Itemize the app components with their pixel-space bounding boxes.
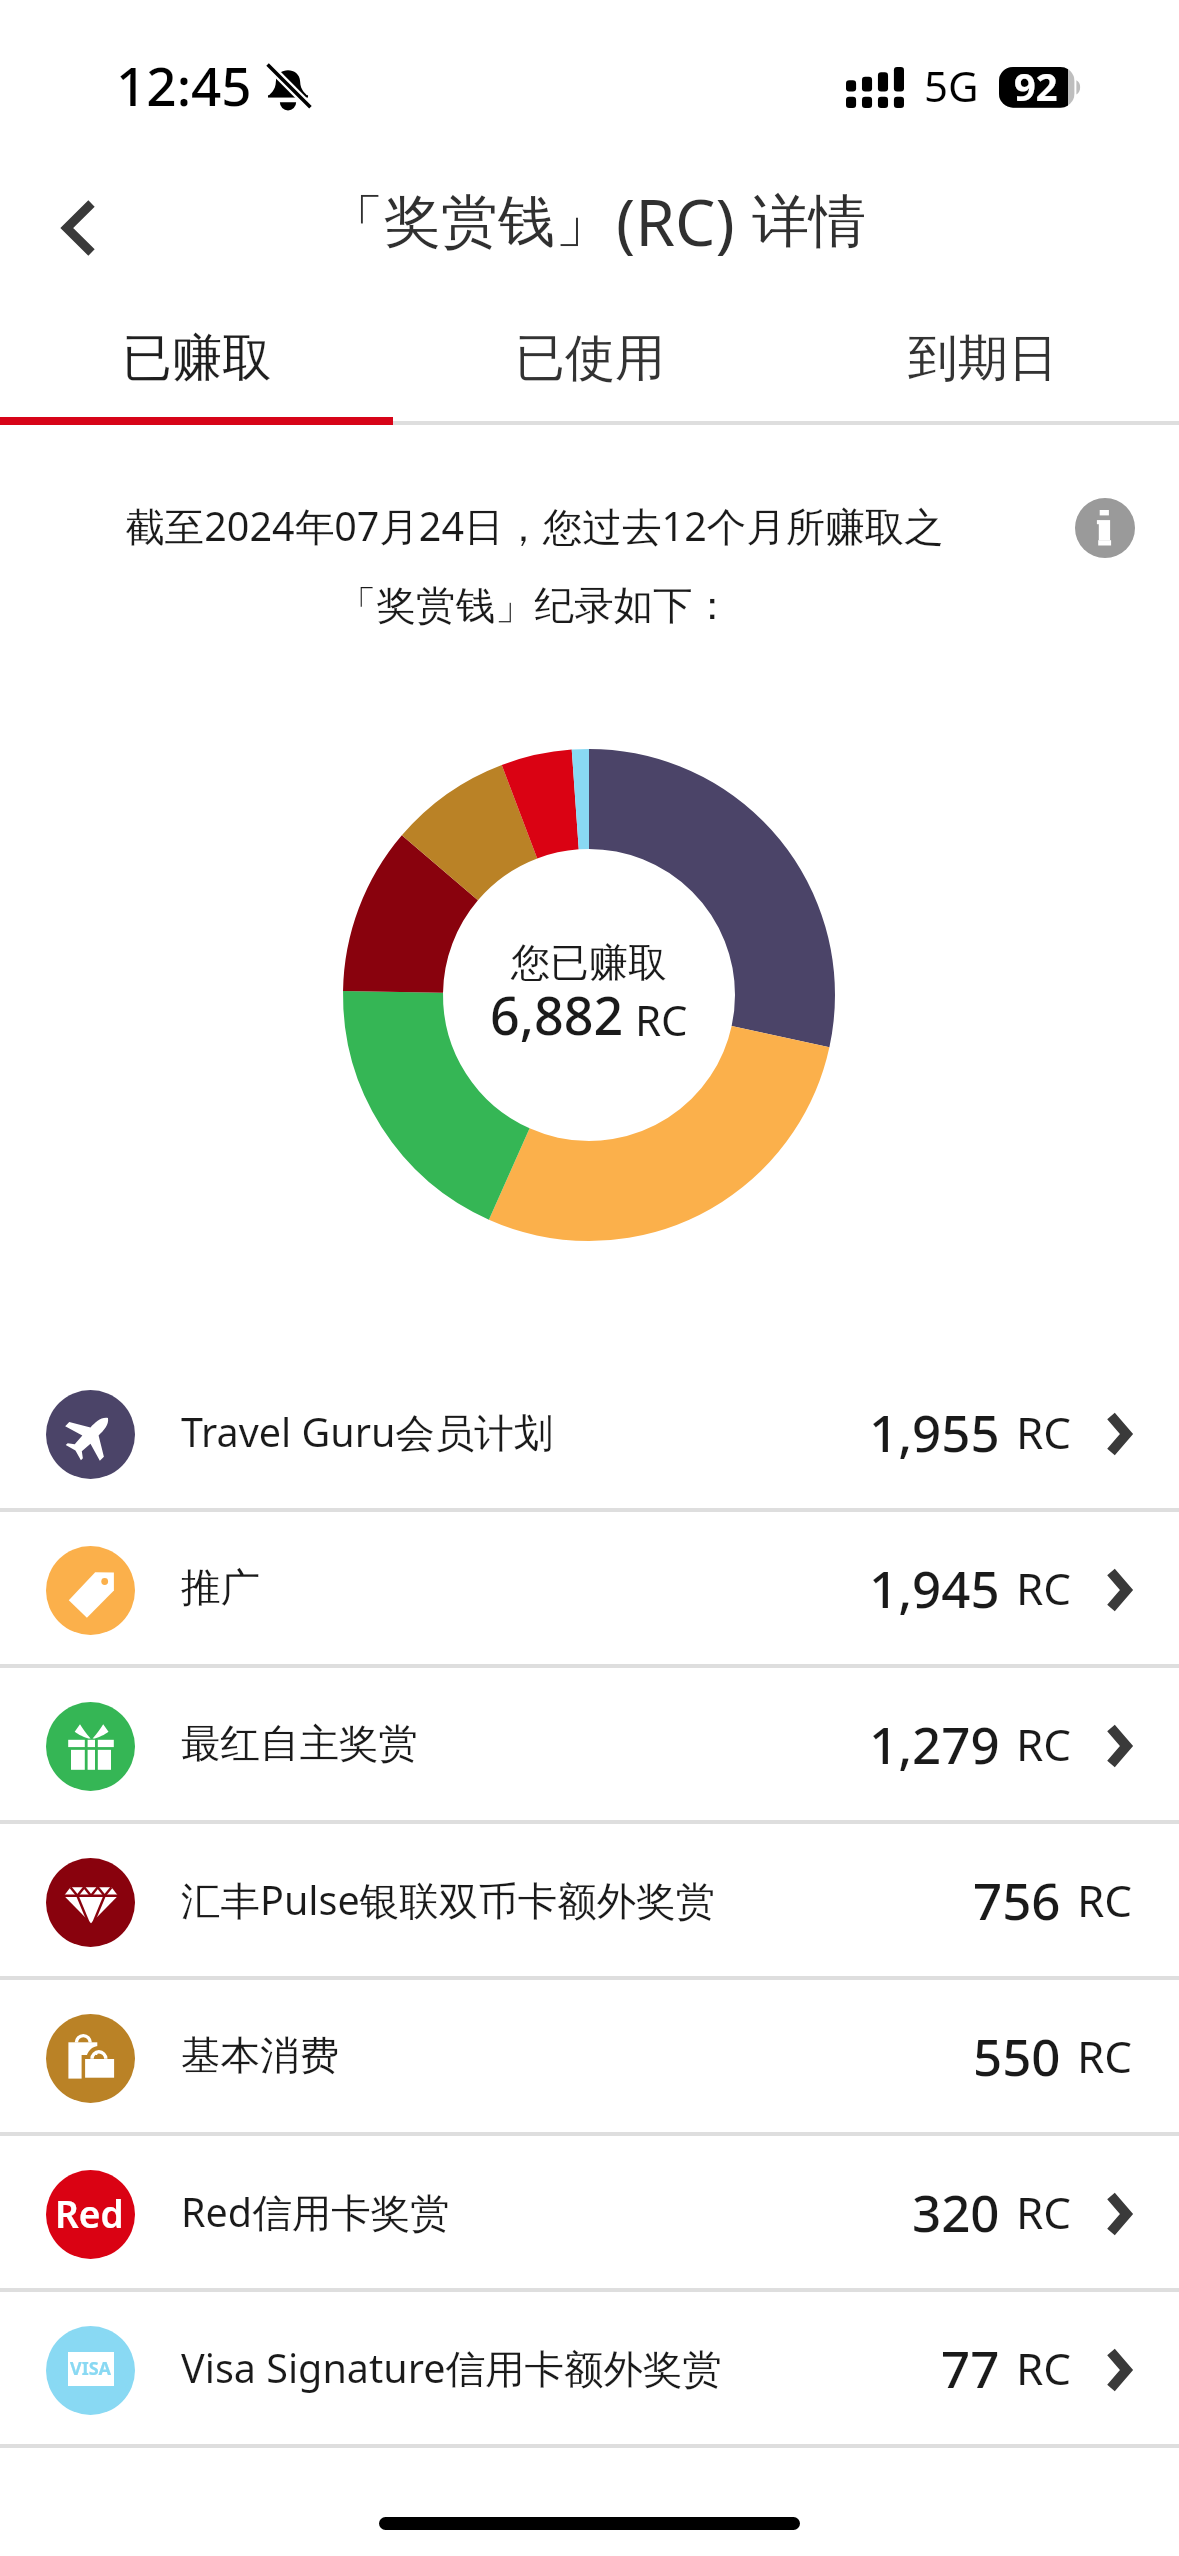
staticText: 已使用: [515, 327, 665, 390]
staticText: 汇丰Pulse银联双币卡额外奖赏: [181, 1873, 716, 1927]
staticText: RC: [1016, 1714, 1072, 1774]
button[interactable]: 汇丰Pulse银联双币卡额外奖赏: [0, 1824, 1179, 1980]
button[interactable]: Red: [0, 2136, 1179, 2292]
button[interactable]: 到期日: [786, 286, 1179, 430]
button[interactable]: 最红自主奖赏: [0, 1668, 1179, 1824]
staticText: 320: [912, 2177, 1000, 2246]
staticText: Visa Signature信用卡额外奖赏: [181, 2341, 722, 2395]
staticText: VISA: [70, 2356, 112, 2381]
staticText: 5G: [924, 57, 979, 114]
staticText: 1,945: [869, 1553, 1000, 1622]
staticText: RC: [1016, 2182, 1072, 2242]
staticText: RC: [1016, 1402, 1072, 1462]
staticText: Travel Guru会员计划: [181, 1405, 554, 1459]
staticText: RC: [1077, 2026, 1133, 2086]
staticText: Red信用卡奖赏: [181, 2185, 450, 2239]
staticText: 92: [1014, 60, 1058, 101]
staticText: 「奖赏钱」: [327, 186, 612, 258]
staticText: 550: [973, 2021, 1061, 2090]
staticText: RC: [635, 991, 688, 1048]
button[interactable]: 推广: [0, 1512, 1179, 1668]
staticText: 到期日: [908, 327, 1058, 390]
staticText: RC: [1016, 1558, 1072, 1618]
staticText: 您已赚取: [511, 938, 667, 987]
staticText: (RC): [616, 178, 735, 265]
staticText: 已赚取: [122, 327, 272, 390]
staticText: 推广: [181, 1563, 260, 1613]
staticText: 756: [973, 1865, 1061, 1934]
staticText: 77: [941, 2333, 1000, 2402]
staticText: 最红自主奖赏: [181, 1719, 418, 1769]
button[interactable]: 已使用: [393, 286, 786, 430]
staticText: 12:45: [116, 49, 252, 121]
staticText: Red: [55, 2188, 124, 2238]
button[interactable]: Information: [1075, 498, 1135, 558]
staticText: 「奖赏钱」纪录如下：: [337, 581, 732, 631]
button[interactable]: 基本消费: [0, 1980, 1179, 2136]
staticText: 1,279: [869, 1709, 1000, 1778]
button[interactable]: Travel Guru会员计划: [0, 1356, 1179, 1512]
staticText: 1,955: [869, 1397, 1000, 1466]
staticText: 详情: [752, 186, 866, 258]
staticText: 截至2024年07月24日，您过去12个月所赚取之: [125, 499, 944, 553]
button[interactable]: 已赚取: [0, 286, 393, 430]
staticText: RC: [1016, 2338, 1072, 2398]
staticText: 基本消费: [181, 2031, 339, 2081]
button[interactable]: Back: [23, 173, 133, 283]
button[interactable]: VISA: [0, 2292, 1179, 2448]
staticText: 6,882: [490, 979, 624, 1050]
staticText: RC: [1077, 1870, 1133, 1930]
